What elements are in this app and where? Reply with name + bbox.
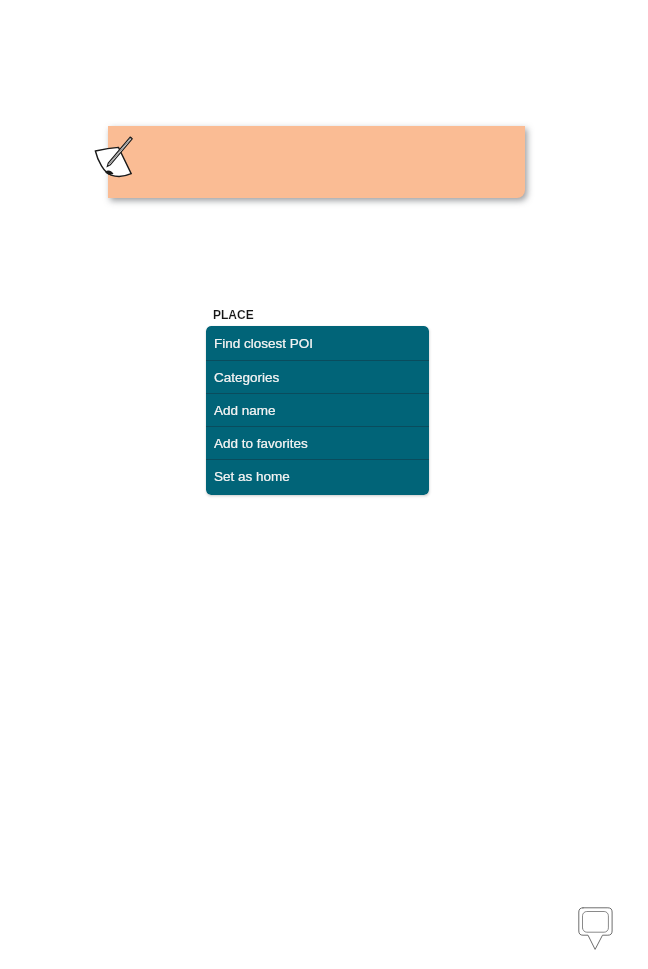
staticText: Categories [214,370,280,385]
staticText: Set as home [214,469,290,484]
staticText: Add name [214,403,276,418]
other: Edit note [94,132,136,180]
button[interactable]: Add name [206,394,429,427]
button[interactable]: Add to favorites [206,427,429,460]
button[interactable]: Place marker [576,905,616,953]
button[interactable] [108,126,525,198]
staticText: Find closest POI [214,336,314,351]
button[interactable]: Find closest POI [206,326,429,361]
button[interactable]: Categories [206,361,429,394]
button[interactable]: Set as home [206,460,429,493]
staticText: Add to favorites [214,436,308,451]
staticText: PLACE [213,308,254,321]
